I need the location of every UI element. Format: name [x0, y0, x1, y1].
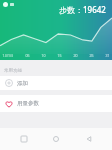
staticText: 步数：19642 [59, 4, 106, 15]
staticText: 31 [105, 53, 110, 58]
button[interactable]: Home [47, 130, 65, 148]
button[interactable]: Recents [15, 130, 33, 148]
button[interactable]: Back [80, 130, 98, 148]
staticText: 10 [41, 53, 46, 58]
other: 健康参数 [5, 100, 13, 108]
staticText: 1月1日 [2, 53, 14, 58]
staticText: 05 [25, 53, 30, 58]
staticText: 25 [89, 53, 94, 58]
staticText: 用量参数 [17, 100, 39, 107]
staticText: 15 [57, 53, 62, 58]
staticText: 添加 [17, 80, 28, 87]
staticText: 常用功能 [4, 68, 22, 74]
staticText: 20 [73, 53, 78, 58]
button[interactable]: 健康参数 [0, 95, 112, 112]
button[interactable]: 添加 [0, 76, 112, 90]
